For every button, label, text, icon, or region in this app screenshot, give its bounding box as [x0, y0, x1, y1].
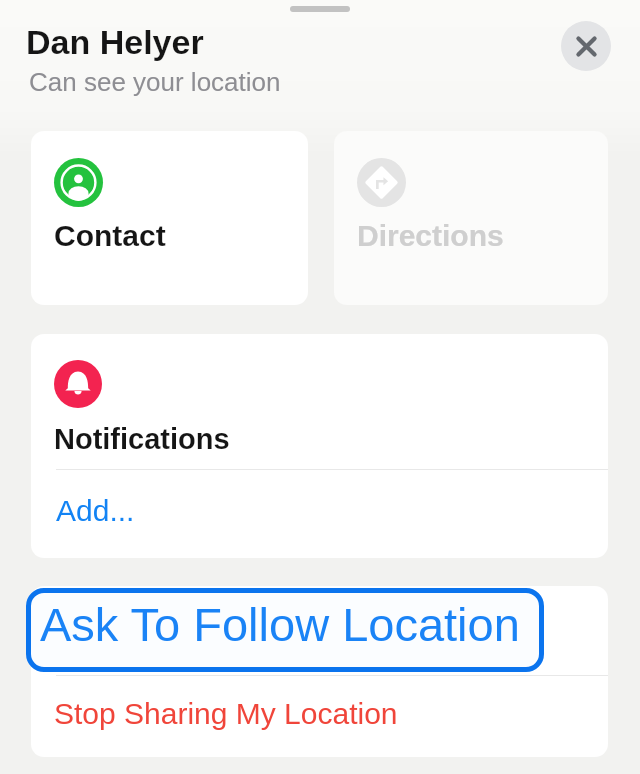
button[interactable]: Ask To Follow Location [31, 586, 608, 675]
staticText: Contact [54, 219, 166, 253]
staticText: Ask To Follow Location [40, 598, 520, 651]
button[interactable]: Contact [31, 131, 308, 305]
staticText: Stop Sharing My Location [54, 697, 398, 731]
staticText: Notifications [54, 423, 230, 455]
staticText: Directions [357, 219, 504, 253]
button[interactable]: Directions [334, 131, 608, 305]
staticText: Add... [56, 494, 135, 528]
button[interactable]: Close [561, 21, 611, 71]
staticText: Ask To Follow Location [54, 616, 361, 650]
staticText: Can see your location [29, 67, 281, 96]
staticText: Dan Helyer [26, 23, 204, 61]
button[interactable]: Add... [31, 470, 608, 558]
button[interactable]: Stop Sharing My Location [31, 676, 608, 757]
button[interactable]: Notifications [31, 334, 608, 469]
